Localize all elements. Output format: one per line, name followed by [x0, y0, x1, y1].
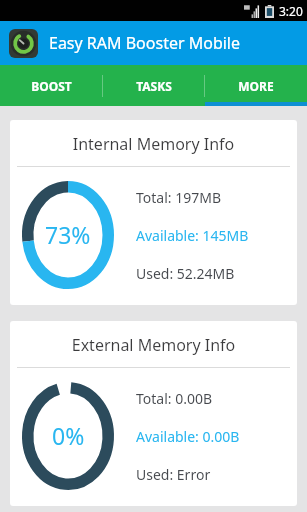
staticText: Used: 52.24MB: [136, 264, 235, 283]
staticText: BOOST: [31, 78, 72, 94]
button[interactable]: Internal Memory Info: [10, 120, 297, 305]
staticText: Easy RAM Booster Mobile: [49, 32, 241, 54]
button[interactable]: TASKS: [103, 65, 205, 106]
staticText: Available: 145MB: [136, 226, 249, 245]
button[interactable]: External Memory Info: [10, 321, 297, 506]
staticText: TASKS: [136, 78, 172, 94]
staticText: Available: 0.00B: [136, 427, 240, 446]
button[interactable]: App icon: [9, 29, 38, 58]
staticText: MORE: [238, 78, 274, 94]
staticText: 73%: [45, 219, 91, 250]
staticText: 3:20: [279, 3, 303, 19]
other: Battery: [265, 5, 274, 18]
staticText: External Memory Info: [10, 334, 297, 356]
staticText: Used: Error: [136, 465, 211, 484]
staticText: 0%: [52, 420, 85, 451]
button[interactable]: BOOST: [0, 65, 103, 106]
staticText: Total: 0.00B: [136, 389, 213, 408]
staticText: Total: 197MB: [136, 188, 222, 207]
other: Signal strength 3G: [244, 5, 260, 18]
button[interactable]: MORE: [205, 65, 307, 106]
staticText: Internal Memory Info: [10, 133, 297, 155]
